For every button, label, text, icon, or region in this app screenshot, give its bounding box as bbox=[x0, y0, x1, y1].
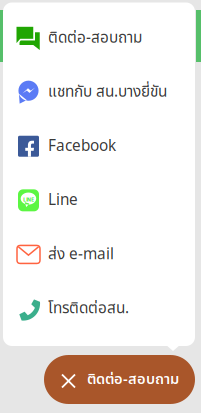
button[interactable]: ติดต่อ-สอบถาม bbox=[3, 11, 195, 65]
staticText: Line bbox=[48, 189, 78, 212]
staticText: โทรติดต่อสน. bbox=[48, 297, 129, 320]
staticText: แชทกับ สน.บางยี่ขัน bbox=[48, 81, 167, 104]
staticText: ติดต่อ-สอบถาม bbox=[87, 368, 179, 391]
button[interactable]: LINE bbox=[3, 173, 195, 227]
staticText: ส่ง e-mail bbox=[48, 243, 114, 266]
staticText: ติดต่อ-สอบถาม bbox=[48, 26, 142, 50]
button[interactable]: โทรติดต่อสน. bbox=[3, 281, 195, 336]
button[interactable]: ติดต่อ-สอบถาม bbox=[44, 355, 195, 404]
button[interactable]: Facebook bbox=[3, 119, 195, 173]
staticText: Facebook bbox=[48, 135, 116, 158]
button[interactable]: แชทกับ สน.บางยี่ขัน bbox=[3, 65, 195, 119]
button[interactable]: ส่ง e-mail bbox=[3, 227, 195, 281]
staticText: LINE bbox=[23, 197, 34, 203]
